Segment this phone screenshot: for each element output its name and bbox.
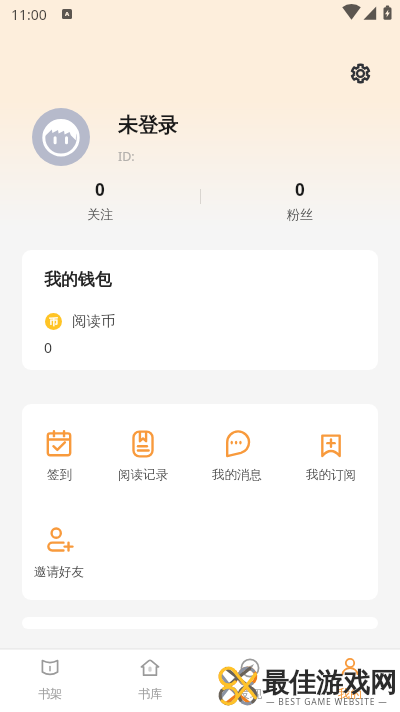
staticText: 关注	[87, 206, 113, 222]
staticText: 粉丝	[287, 206, 313, 222]
staticText: 书架	[38, 686, 62, 701]
button[interactable]: 我的	[300, 650, 400, 712]
staticText: 11:00	[11, 5, 47, 24]
staticText: 书库	[138, 686, 162, 701]
button[interactable]: 书架	[0, 650, 100, 712]
staticText: 我的钱包	[44, 269, 112, 290]
staticText: 最佳游戏网	[262, 666, 397, 700]
staticText: 邀请好友	[34, 564, 84, 580]
button[interactable]: 我的消息	[185, 430, 289, 483]
staticText: A	[65, 10, 70, 18]
button[interactable]: 阅读记录	[91, 430, 195, 483]
staticText: ID:	[118, 148, 135, 165]
staticText: 0	[295, 178, 305, 201]
button[interactable]: 0	[0, 178, 200, 226]
button[interactable]: Avatar	[32, 108, 90, 166]
button[interactable]: 我的订阅	[279, 430, 378, 483]
staticText: 阅读记录	[118, 467, 168, 483]
staticText: 币	[49, 316, 58, 327]
staticText: 签到	[47, 467, 72, 483]
button[interactable]: 发现	[200, 650, 300, 712]
button[interactable]: 书库	[100, 650, 200, 712]
staticText: 发现	[238, 686, 262, 701]
button[interactable]: 0	[200, 178, 400, 226]
staticText: 0	[95, 178, 105, 201]
staticText: 我的	[338, 686, 362, 701]
staticText: 我的消息	[212, 467, 262, 483]
button[interactable]: 我的钱包	[22, 250, 378, 370]
button[interactable]: Settings	[340, 53, 381, 94]
staticText: 0	[44, 338, 53, 357]
button[interactable]: 邀请好友	[22, 527, 111, 580]
staticText: — BEST GAME WEBSITE —	[266, 696, 388, 708]
staticText: 阅读币	[72, 312, 116, 330]
staticText: 我的订阅	[306, 467, 356, 483]
staticText: 未登录	[118, 113, 178, 138]
button[interactable]: 签到	[22, 430, 111, 483]
